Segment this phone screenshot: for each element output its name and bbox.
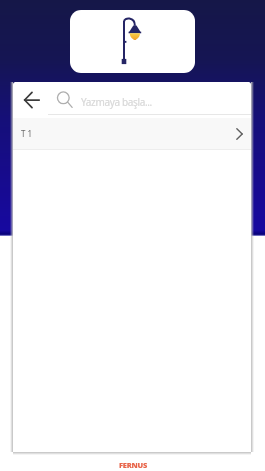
button[interactable]: T 1 xyxy=(13,118,251,150)
button[interactable]: Back xyxy=(16,84,48,116)
staticText: FERNUS xyxy=(119,460,147,470)
button[interactable]: Search xyxy=(56,91,73,108)
staticText: T 1 xyxy=(21,128,33,139)
staticText: Yazmaya başla... xyxy=(81,95,152,109)
